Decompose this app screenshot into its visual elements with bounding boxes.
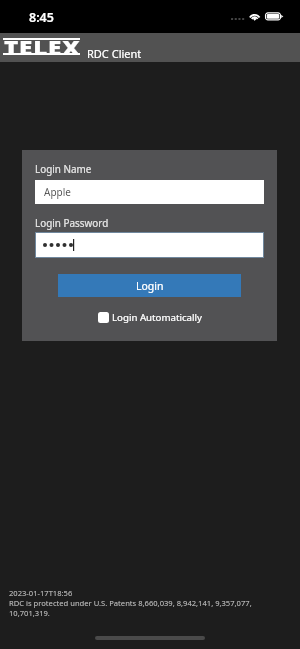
staticText: 2023-01-17T18:56 (9, 588, 73, 598)
button[interactable]: Telex logo (1, 33, 81, 62)
staticText: Login Automatically (112, 311, 202, 324)
staticText: Login Name (35, 162, 92, 175)
other: Wi-Fi (249, 12, 261, 21)
staticText: TELEX (4, 35, 81, 60)
button[interactable]: Login Automatically (98, 311, 202, 324)
staticText: Login (136, 279, 164, 293)
staticText: Login Password (35, 216, 109, 229)
staticText: RDC Client (87, 46, 142, 61)
staticText: RDC is protected under U.S. Patents 8,66… (9, 598, 252, 619)
staticText: 8:45 (29, 9, 54, 26)
other: Battery (265, 12, 285, 21)
other: Cellular signal (231, 18, 243, 22)
button[interactable] (35, 232, 264, 258)
button[interactable]: Apple (35, 180, 264, 204)
staticText: Apple (44, 185, 71, 199)
button[interactable]: Login (58, 274, 241, 297)
